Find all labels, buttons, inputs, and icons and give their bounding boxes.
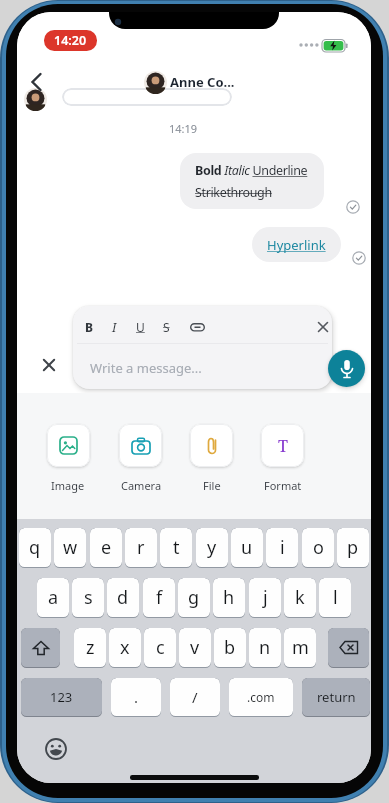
staticText: j [263, 585, 268, 610]
button[interactable]: Bold Italic Underline [180, 153, 324, 209]
button[interactable]: 123 [21, 678, 102, 717]
staticText: u [241, 535, 253, 560]
button[interactable]: f [143, 578, 175, 618]
button[interactable]: return [302, 678, 370, 717]
button[interactable]: y [196, 528, 228, 568]
button[interactable]: T [261, 424, 304, 467]
button[interactable]: b [214, 628, 246, 668]
button[interactable] [328, 628, 369, 668]
button[interactable]: z [74, 628, 106, 668]
staticText: t [173, 535, 180, 560]
button[interactable]: a [37, 578, 69, 618]
button[interactable]: Anne Co... [170, 72, 235, 92]
staticText: q [29, 535, 41, 560]
button[interactable]: h [213, 578, 245, 618]
staticText: . [134, 687, 139, 707]
button[interactable] [42, 358, 56, 372]
button[interactable] [119, 424, 162, 467]
staticText: g [188, 585, 200, 610]
staticText: y [207, 535, 217, 560]
staticText: File [203, 478, 221, 493]
button[interactable] [328, 350, 365, 387]
staticText: r [137, 535, 145, 560]
button[interactable]: x [109, 628, 141, 668]
button[interactable]: g [178, 578, 210, 618]
button[interactable]: u [231, 528, 263, 568]
staticText: z [86, 635, 95, 660]
staticText: B [85, 319, 94, 335]
staticText: Anne Co... [170, 73, 235, 91]
button[interactable]: o [302, 528, 334, 568]
staticText: U [136, 319, 145, 335]
staticText: o [313, 535, 324, 560]
staticText: Format [264, 478, 302, 493]
staticText: c [156, 635, 165, 660]
button[interactable]: / [170, 678, 220, 717]
button[interactable] [45, 738, 67, 760]
button[interactable]: B [82, 318, 96, 336]
staticText: return [317, 688, 356, 706]
staticText: f [156, 585, 163, 610]
button[interactable]: l [319, 578, 351, 618]
staticText: S [163, 319, 170, 335]
staticText: 14:20 [54, 32, 87, 49]
staticText: 14:19 [169, 121, 198, 136]
button[interactable] [190, 424, 233, 467]
button[interactable]: p [337, 528, 369, 568]
staticText: Image [51, 478, 85, 493]
button[interactable]: m [284, 628, 316, 668]
button[interactable]: d [107, 578, 139, 618]
button[interactable]: n [249, 628, 281, 668]
staticText: v [190, 635, 200, 660]
staticText: Bold Italic Underline [195, 162, 308, 179]
button[interactable] [190, 323, 205, 332]
staticText: Hyperlink [267, 236, 326, 254]
button[interactable]: w [54, 528, 86, 568]
button[interactable] [21, 628, 60, 668]
button[interactable]: r [125, 528, 157, 568]
staticText: l [333, 585, 338, 610]
button[interactable]: t [160, 528, 192, 568]
button[interactable]: k [284, 578, 316, 618]
button[interactable]: v [179, 628, 211, 668]
staticText: / [192, 687, 198, 707]
staticText: a [48, 585, 59, 610]
staticText: .com [247, 689, 275, 705]
staticText: n [259, 635, 271, 660]
button[interactable]: i [266, 528, 298, 568]
staticText: T [278, 435, 288, 457]
staticText: e [101, 535, 112, 560]
staticText: k [295, 585, 305, 610]
button[interactable]: s [72, 578, 104, 618]
button[interactable]: q [19, 528, 51, 568]
staticText: x [120, 635, 130, 660]
button[interactable]: I [107, 318, 121, 336]
button[interactable]: e [90, 528, 122, 568]
button[interactable]: .com [229, 678, 293, 717]
staticText: Write a message... [90, 359, 202, 377]
button[interactable]: 14:20 [44, 30, 97, 51]
button[interactable]: Hyperlink [252, 227, 341, 262]
button[interactable]: S [158, 318, 174, 336]
staticText: s [84, 585, 93, 610]
staticText: h [223, 585, 235, 610]
staticText: w [63, 535, 78, 560]
staticText: Strikethrough [195, 184, 272, 201]
staticText: b [224, 635, 236, 660]
staticText: Camera [121, 478, 162, 493]
button[interactable] [317, 321, 329, 333]
button[interactable] [29, 72, 45, 92]
staticText: 123 [50, 688, 73, 706]
button[interactable]: U [132, 318, 148, 336]
button[interactable]: c [144, 628, 176, 668]
staticText: d [117, 585, 129, 610]
button[interactable]: j [249, 578, 281, 618]
staticText: m [292, 635, 309, 660]
staticText: i [280, 535, 285, 560]
button[interactable]: . [111, 678, 161, 717]
button[interactable] [47, 424, 90, 467]
staticText: p [347, 535, 359, 560]
staticText: I [112, 319, 117, 335]
